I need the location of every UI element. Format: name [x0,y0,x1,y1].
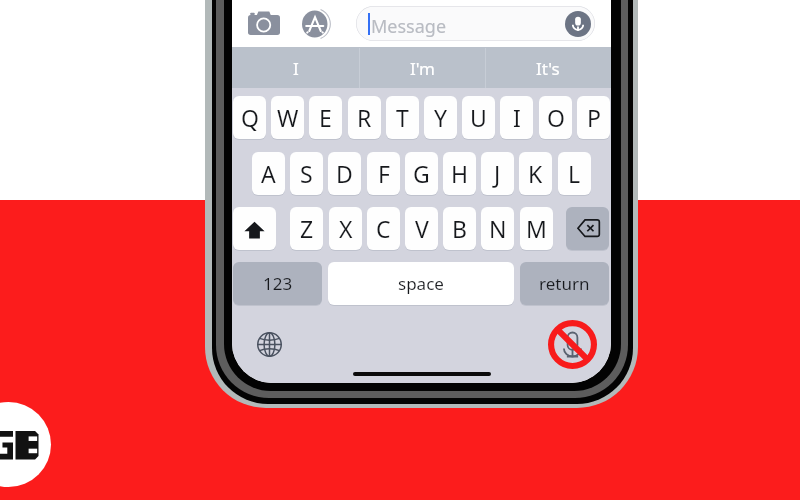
staticText: W [277,102,299,133]
staticText: I'm [410,57,435,80]
button[interactable]: O [539,96,572,139]
button[interactable]: S [290,152,323,195]
button[interactable]: Dictate [565,11,591,37]
button[interactable]: Y [424,96,457,139]
button[interactable]: I [232,47,359,89]
staticText: J [494,158,501,189]
button[interactable]: W [271,96,304,139]
button[interactable]: T [386,96,419,139]
button[interactable]: B [443,207,476,250]
button[interactable]: App Store [302,10,330,38]
staticText: S [300,158,313,189]
button[interactable]: Z [290,207,323,250]
button[interactable]: A [252,152,285,195]
staticText: D [336,158,353,189]
staticText: C [376,213,391,244]
button[interactable]: iGeeksBlog logo [0,402,51,487]
staticText: U [470,102,487,133]
button[interactable] [233,207,276,250]
button[interactable]: J [481,152,514,195]
button[interactable]: I [500,96,533,139]
button[interactable]: 123 [233,262,322,305]
button[interactable]: E [309,96,342,139]
button[interactable] [566,207,609,250]
button[interactable]: M [520,207,553,250]
staticText: V [415,213,429,244]
staticText: space [398,272,444,295]
button[interactable]: C [367,207,400,250]
button[interactable]: G [405,152,438,195]
button[interactable]: Dictation disabled [548,320,597,369]
button[interactable]: D [328,152,361,195]
button[interactable]: space [328,262,514,305]
button[interactable]: K [519,152,552,195]
button[interactable]: Camera [248,11,280,35]
staticText: G [413,158,430,189]
button[interactable]: X [329,207,362,250]
button[interactable]: return [520,262,609,305]
staticText: return [539,272,590,295]
staticText: Message [371,14,447,39]
staticText: I [513,102,521,133]
staticText: I [293,57,299,80]
staticText: L [568,158,581,189]
staticText: 123 [263,272,293,295]
staticText: F [378,158,390,189]
staticText: P [587,102,601,133]
staticText: Z [300,213,314,244]
button[interactable]: P [577,96,610,139]
button[interactable]: L [558,152,591,195]
button[interactable]: R [348,96,381,139]
staticText: K [528,158,543,189]
staticText: A [261,158,276,189]
staticText: It's [536,57,560,80]
button[interactable]: U [462,96,495,139]
staticText: N [489,213,507,244]
button[interactable]: It's [485,47,611,89]
staticText: O [547,102,565,133]
button[interactable]: I'm [359,47,485,89]
staticText: Q [241,102,259,133]
staticText: T [396,102,409,133]
button[interactable]: H [443,152,476,195]
button[interactable]: Message [356,6,595,41]
staticText: X [339,213,353,244]
staticText: E [319,102,332,133]
button[interactable]: V [405,207,438,250]
staticText: B [452,213,467,244]
staticText: M [526,213,547,244]
button[interactable]: Change keyboard [257,332,282,357]
button[interactable]: N [481,207,514,250]
staticText: R [357,102,372,133]
staticText: H [451,158,469,189]
button[interactable]: F [367,152,400,195]
button[interactable]: Q [233,96,266,139]
staticText: Y [434,102,448,133]
